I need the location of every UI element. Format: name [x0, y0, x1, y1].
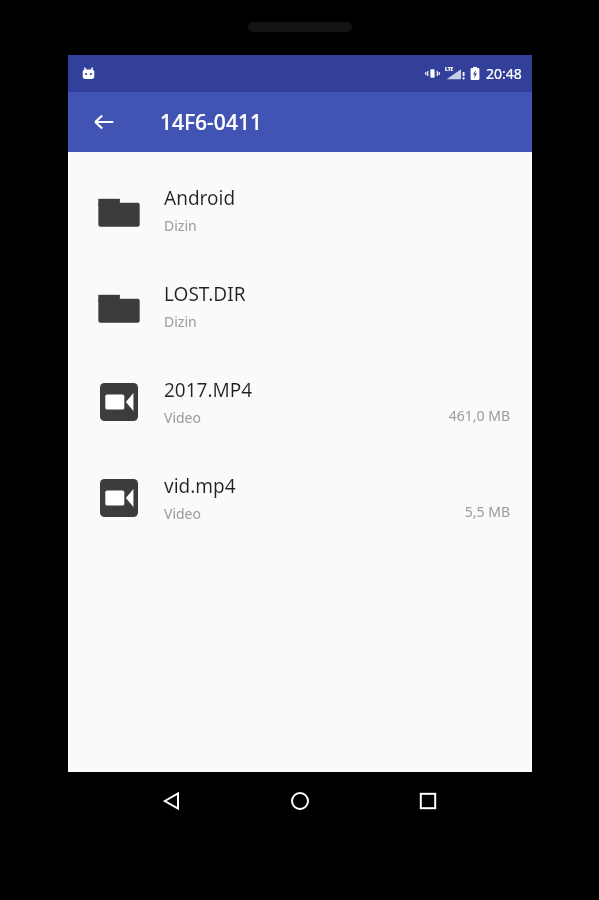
button[interactable]: Android: [68, 162, 532, 258]
button[interactable]: Home: [276, 777, 324, 825]
staticText: Video: [164, 504, 201, 523]
staticText: LTE: [445, 66, 454, 73]
staticText: vid.mp4: [164, 473, 236, 499]
button[interactable]: LOST.DIR: [68, 258, 532, 354]
staticText: Android: [164, 185, 236, 211]
staticText: 20:48: [486, 64, 522, 83]
staticText: 5,5 MB: [464, 502, 510, 521]
staticText: 2017.MP4: [164, 377, 253, 403]
staticText: Video: [164, 408, 201, 427]
staticText: Dizin: [164, 312, 197, 331]
button[interactable]: Back: [86, 104, 122, 140]
button[interactable]: 2017.MP4: [68, 354, 532, 450]
staticText: LOST.DIR: [164, 281, 246, 307]
button[interactable]: Recent apps: [404, 777, 452, 825]
button[interactable]: Back: [148, 777, 196, 825]
staticText: Dizin: [164, 216, 197, 235]
staticText: 14F6-0411: [160, 108, 262, 137]
staticText: 461,0 MB: [448, 406, 510, 425]
button[interactable]: vid.mp4: [68, 450, 532, 546]
